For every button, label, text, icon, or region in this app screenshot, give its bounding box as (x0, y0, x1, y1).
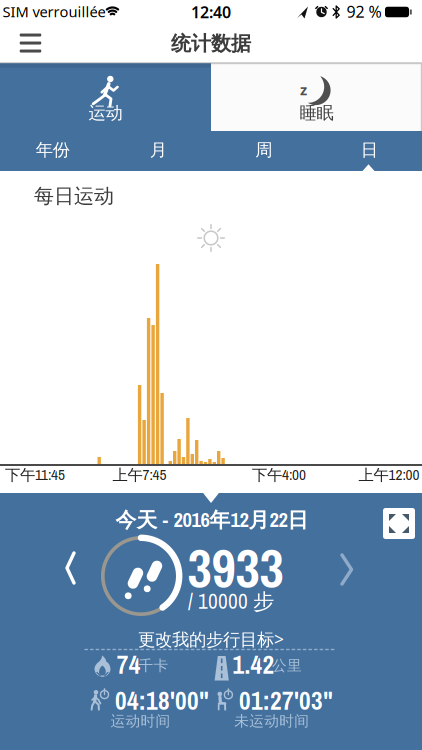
button[interactable] (211, 63, 422, 131)
button[interactable]: 日 (329, 135, 409, 165)
staticText: 每日运动 (34, 184, 114, 208)
button[interactable]: 月 (118, 135, 198, 165)
button[interactable]: 周 (224, 135, 304, 165)
staticText: 74 (117, 647, 141, 681)
staticText: 统计数据 (171, 31, 251, 56)
staticText: 运动时间 (111, 712, 171, 730)
staticText: 上午7:45 (112, 464, 166, 485)
staticText: 公里 (272, 656, 302, 674)
staticText: 3933 (187, 532, 283, 604)
staticText: 12:40 (191, 1, 231, 23)
button[interactable]: 更改我的步行目标> (138, 627, 284, 650)
staticText: 睡眠 (299, 102, 333, 124)
staticText: 01:27'03" (239, 683, 333, 717)
staticText: 更改我的步行目标> (138, 627, 284, 650)
button[interactable] (383, 508, 415, 539)
staticText: / 10000 步 (188, 587, 274, 615)
staticText: 未运动时间 (234, 712, 309, 730)
staticText: 下午11:45 (5, 464, 65, 485)
staticText: 92 % (346, 1, 381, 22)
button[interactable] (20, 33, 41, 52)
staticText: 日 (361, 139, 378, 161)
button[interactable]: 年份 (13, 135, 93, 165)
staticText: 下午4:00 (252, 464, 306, 485)
button[interactable] (338, 552, 355, 587)
staticText: 月 (150, 139, 167, 161)
button[interactable] (0, 63, 211, 131)
staticText: 周 (255, 139, 272, 161)
staticText: 今天 - 2016年12月22日 (115, 506, 308, 533)
staticText: 04:18'00" (115, 683, 209, 717)
staticText: 年份 (36, 139, 70, 161)
staticText: 千卡 (138, 656, 168, 674)
staticText: z (300, 80, 307, 99)
staticText: SIM verrouillée (2, 2, 105, 21)
button[interactable] (63, 550, 78, 586)
staticText: 运动 (88, 102, 122, 124)
staticText: 1.42 (232, 647, 274, 681)
staticText: 上午12:00 (358, 464, 419, 485)
